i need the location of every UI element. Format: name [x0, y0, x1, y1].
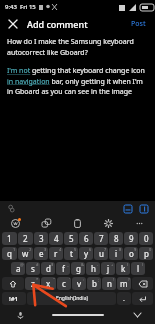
staticText: t — [70, 248, 73, 259]
button[interactable]: Shift — [2, 277, 24, 290]
staticText: & — [81, 262, 84, 267]
button[interactable]: a — [11, 262, 25, 275]
staticText: ! — [113, 277, 115, 282]
staticText: q — [7, 248, 12, 259]
staticText: d — [46, 263, 51, 274]
button[interactable]: . — [117, 292, 131, 305]
staticText: i — [115, 248, 118, 259]
button[interactable]: English(India) — [27, 292, 116, 305]
button[interactable]: 5 — [64, 232, 78, 245]
button[interactable]: m — [117, 277, 131, 290]
button[interactable]: e — [34, 247, 48, 260]
button[interactable]: Stickers — [40, 217, 53, 230]
staticText: p — [144, 248, 149, 259]
staticText: b — [92, 278, 97, 289]
button[interactable]: j — [101, 262, 115, 275]
button[interactable]: i — [109, 247, 123, 260]
button[interactable]: 7 — [94, 232, 108, 245]
button[interactable]: Expressions — [9, 217, 22, 230]
button[interactable]: k — [116, 262, 130, 275]
button[interactable]: b — [87, 277, 101, 290]
staticText: 3 — [39, 233, 44, 244]
button[interactable]: x — [41, 277, 56, 290]
button[interactable]: Attach — [6, 203, 17, 214]
button[interactable]: Voice input — [14, 309, 26, 321]
staticText: English(India) — [56, 295, 88, 302]
staticText: 0 — [149, 247, 152, 252]
button[interactable]: 9 — [124, 232, 138, 245]
staticText: h — [91, 263, 96, 274]
button[interactable]: Expand keyboard — [138, 203, 149, 214]
staticText: . — [123, 294, 125, 304]
staticText: 8 — [119, 247, 122, 252]
button[interactable]: h — [86, 262, 100, 275]
staticText: ? — [128, 277, 130, 282]
button[interactable]: n — [102, 277, 116, 290]
button[interactable]: s — [26, 262, 40, 275]
button[interactable]: q — [2, 247, 17, 260]
button[interactable]: z — [25, 277, 40, 290]
button[interactable]: c — [57, 277, 71, 290]
staticText: 7 — [104, 247, 107, 252]
staticText: 7 — [99, 233, 104, 244]
button[interactable]: t — [64, 247, 78, 260]
staticText: Post — [131, 19, 146, 29]
staticText: 9:43 Fri 15 — [5, 3, 36, 11]
button[interactable]: Enter — [132, 292, 153, 305]
staticText: u — [99, 248, 104, 259]
staticText: 6 — [89, 247, 92, 252]
staticText: f — [62, 263, 65, 274]
staticText: " — [53, 277, 55, 282]
button[interactable]: 4 — [49, 232, 63, 245]
staticText: s — [31, 263, 35, 274]
button[interactable]: l — [131, 262, 145, 275]
staticText: o — [129, 248, 134, 259]
button[interactable]: 3 — [34, 232, 48, 245]
staticText: I'm not getting that keyboard change ico… — [7, 66, 148, 96]
staticText: 1 — [13, 247, 16, 252]
button[interactable]: 1 — [2, 232, 17, 245]
staticText: 9 — [129, 233, 134, 244]
button[interactable]: More options — [133, 217, 146, 230]
staticText: ; — [98, 277, 100, 282]
button[interactable]: Hide keyboard — [131, 309, 143, 321]
staticText: 4 — [59, 247, 62, 252]
staticText: # — [36, 262, 39, 267]
button[interactable]: Settings — [102, 217, 115, 230]
button[interactable]: Post — [127, 17, 150, 31]
button[interactable]: v — [72, 277, 86, 290]
staticText: 5 — [69, 233, 74, 244]
staticText: 0 — [144, 233, 149, 244]
button[interactable]: y — [79, 247, 93, 260]
button[interactable]: d — [41, 262, 55, 275]
staticText: ' — [69, 277, 70, 282]
button[interactable]: g — [71, 262, 85, 275]
staticText: r — [54, 248, 58, 259]
staticText: How do I make the Samsung keyboard autoc… — [7, 37, 148, 57]
button[interactable]: p — [139, 247, 153, 260]
staticText: 9 — [134, 247, 137, 252]
button[interactable]: u — [94, 247, 108, 260]
button[interactable]: r — [49, 247, 63, 260]
staticText: !#1 — [9, 295, 19, 303]
button[interactable]: 0 — [139, 232, 153, 245]
button[interactable]: 8 — [109, 232, 123, 245]
button[interactable]: 2 — [18, 232, 33, 245]
button[interactable]: Close — [5, 16, 21, 32]
staticText: 8 — [114, 233, 119, 244]
staticText: 6 — [84, 233, 89, 244]
button[interactable]: w — [18, 247, 33, 260]
button[interactable]: Backspace — [132, 277, 153, 290]
staticText: a — [16, 263, 21, 274]
button[interactable]: Keyboard layout — [122, 203, 133, 214]
button[interactable]: 6 — [79, 232, 93, 245]
staticText: 2 — [23, 233, 28, 244]
button[interactable]: Clipboard — [71, 217, 84, 230]
staticText: * — [36, 277, 39, 282]
button[interactable]: !#1 — [2, 292, 26, 305]
staticText: $ — [51, 262, 54, 267]
button[interactable]: f — [56, 262, 70, 275]
button[interactable]: o — [124, 247, 138, 260]
staticText: x — [46, 278, 51, 289]
staticText: j — [107, 263, 110, 274]
